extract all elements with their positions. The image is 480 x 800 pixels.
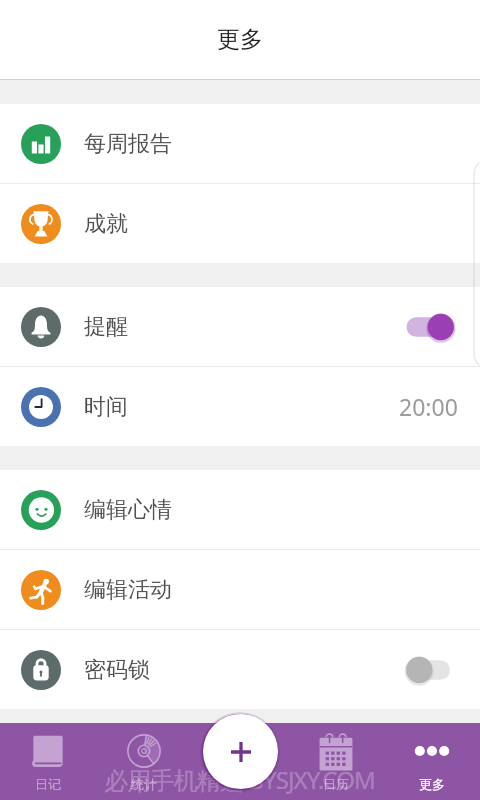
staticText: 日记 — [35, 776, 61, 792]
staticText: 成就 — [84, 210, 128, 238]
staticText: 提醒 — [84, 313, 128, 341]
staticText: 每周报告 — [84, 130, 172, 158]
button[interactable]: 成就 — [0, 184, 480, 263]
staticText: 更多 — [217, 25, 263, 54]
button[interactable]: 编辑心情 — [0, 470, 480, 549]
staticText: 密码锁 — [84, 656, 150, 684]
button[interactable]: Reminder on — [406, 312, 454, 342]
staticText: 统计 — [131, 776, 157, 792]
staticText: 20:00 — [399, 391, 458, 422]
staticText: 更多 — [419, 776, 445, 792]
button[interactable]: Add entry — [203, 714, 278, 789]
button[interactable]: 密码锁 — [0, 630, 480, 709]
button[interactable]: 提醒 — [0, 287, 480, 366]
staticText: 编辑心情 — [84, 496, 172, 524]
button[interactable]: 日历 — [288, 723, 384, 800]
button[interactable]: 统计 — [96, 723, 192, 800]
button[interactable]: 时间 — [0, 367, 480, 446]
staticText: 编辑活动 — [84, 576, 172, 604]
button[interactable]: 编辑活动 — [0, 550, 480, 629]
staticText: 日历 — [323, 776, 349, 792]
button[interactable]: 日记 — [0, 723, 96, 800]
button[interactable]: Password lock off — [406, 655, 454, 685]
staticText: 必用手机精选·BYSJXY.COM — [104, 763, 375, 796]
button[interactable]: 每周报告 — [0, 104, 480, 183]
button[interactable]: 更多 — [384, 723, 480, 800]
staticText: 时间 — [84, 393, 128, 421]
